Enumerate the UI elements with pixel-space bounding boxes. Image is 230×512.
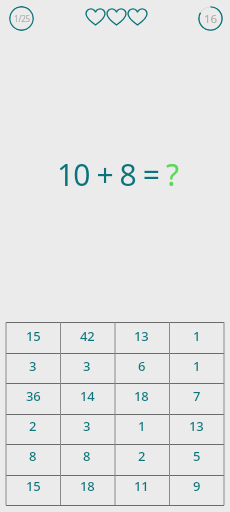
- button[interactable]: 18: [60, 471, 114, 501]
- staticText: 1: [193, 357, 201, 375]
- staticText: 16: [204, 11, 218, 27]
- button[interactable]: 18: [114, 381, 169, 411]
- staticText: 15: [26, 477, 41, 495]
- staticText: 6: [138, 357, 146, 375]
- staticText: 5: [193, 447, 201, 465]
- button[interactable]: 2: [114, 441, 169, 471]
- button[interactable]: 15: [6, 471, 60, 501]
- staticText: 13: [134, 327, 149, 345]
- other: 3 lives remaining: [86, 9, 147, 25]
- button[interactable]: 8: [60, 441, 114, 471]
- button[interactable]: 9: [169, 471, 224, 501]
- staticText: 7: [193, 387, 201, 405]
- button[interactable]: 1: [114, 411, 169, 441]
- staticText: 42: [80, 327, 95, 345]
- button[interactable]: 1: [169, 351, 224, 381]
- button[interactable]: 36: [6, 381, 60, 411]
- staticText: 1/25: [14, 13, 30, 24]
- button[interactable]: 7: [169, 381, 224, 411]
- staticText: 2: [29, 417, 37, 435]
- staticText: 8: [83, 447, 91, 465]
- button[interactable]: 5: [169, 441, 224, 471]
- staticText: 3: [83, 417, 91, 435]
- staticText: 8: [29, 447, 37, 465]
- button[interactable]: 13: [169, 411, 224, 441]
- button[interactable]: Level 1 of 25: [9, 6, 34, 31]
- staticText: 3: [29, 357, 37, 375]
- button[interactable]: 42: [60, 321, 114, 351]
- button[interactable]: 1: [169, 321, 224, 351]
- staticText: 1: [138, 417, 146, 435]
- button[interactable]: 3: [60, 351, 114, 381]
- button[interactable]: 3: [60, 411, 114, 441]
- button[interactable]: Time remaining 16 seconds: [198, 6, 223, 31]
- staticText: 3: [83, 357, 91, 375]
- button[interactable]: 8: [6, 441, 60, 471]
- staticText: 10 + 8 = ?: [57, 154, 179, 195]
- staticText: 36: [26, 387, 41, 405]
- button[interactable]: 11: [114, 471, 169, 501]
- button[interactable]: 2: [6, 411, 60, 441]
- button[interactable]: 15: [6, 321, 60, 351]
- button[interactable]: 13: [114, 321, 169, 351]
- button[interactable]: 14: [60, 381, 114, 411]
- staticText: 14: [80, 387, 95, 405]
- staticText: 1: [193, 327, 201, 345]
- staticText: 11: [134, 477, 149, 495]
- button[interactable]: 3: [6, 351, 60, 381]
- staticText: 13: [189, 417, 204, 435]
- staticText: 15: [26, 327, 41, 345]
- staticText: 2: [138, 447, 146, 465]
- staticText: 18: [80, 477, 95, 495]
- staticText: 9: [193, 477, 201, 495]
- button[interactable]: 6: [114, 351, 169, 381]
- staticText: 18: [134, 387, 149, 405]
